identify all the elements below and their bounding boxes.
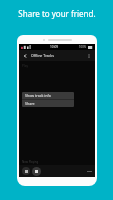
- button[interactable]: Show track info: [22, 92, 74, 99]
- button[interactable]: Navigate up: [21, 52, 29, 60]
- staticText: Show track info: [25, 93, 51, 98]
- staticText: 100%: [79, 45, 87, 49]
- button[interactable]: Share: [22, 100, 74, 107]
- button[interactable]: Previous track: [22, 167, 30, 175]
- staticText: Offline Tracks: [31, 53, 54, 58]
- staticText: Play: [22, 64, 29, 68]
- button[interactable]: More options: [85, 52, 93, 60]
- staticText: Share to your friend.: [18, 8, 96, 19]
- staticText: 10:09: [50, 45, 59, 49]
- staticText: Share: [25, 101, 35, 106]
- button[interactable]: Play: [32, 167, 41, 176]
- staticText: Now Playing: [22, 160, 39, 164]
